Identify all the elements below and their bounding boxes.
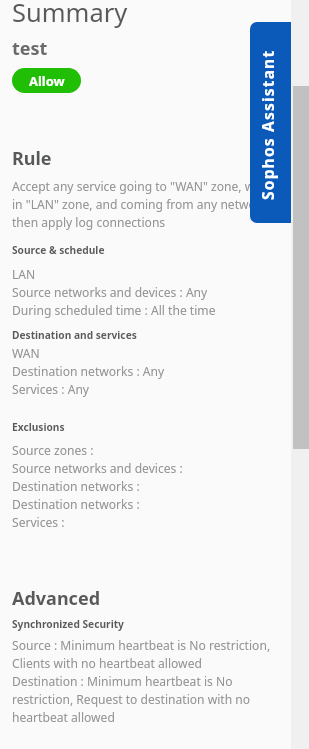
staticText: Synchronized Security <box>12 617 124 631</box>
button[interactable]: Allow <box>12 68 81 93</box>
staticText: Source : Minimum heartbeat is No restric… <box>12 636 288 726</box>
staticText: Destination and services <box>12 328 137 342</box>
staticText: Source zones : Source networks and devic… <box>12 441 183 531</box>
staticText: Summary <box>12 0 128 30</box>
staticText: LAN Source networks and devices : Any Du… <box>12 265 216 319</box>
button[interactable]: Sophos Assistant <box>250 22 291 223</box>
staticText: Exclusions <box>12 420 65 434</box>
staticText: test <box>12 36 48 61</box>
staticText: Advanced <box>12 586 101 611</box>
staticText: WAN Destination networks : Any Services … <box>12 344 165 398</box>
staticText: Accept any service going to "WAN" zone, … <box>12 177 284 231</box>
staticText: Rule <box>12 146 52 171</box>
staticText: Sophos Assistant <box>257 49 278 200</box>
staticText: Allow <box>29 72 65 90</box>
staticText: Source & schedule <box>12 243 105 257</box>
